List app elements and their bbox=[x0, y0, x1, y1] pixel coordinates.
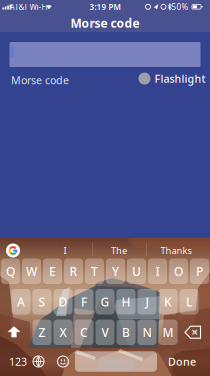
staticText: V bbox=[101, 324, 108, 340]
staticText: The bbox=[111, 244, 127, 257]
button[interactable]: L bbox=[179, 289, 198, 314]
staticText: Thanks bbox=[160, 244, 191, 257]
staticText: J bbox=[145, 294, 148, 310]
button[interactable]: Google search bbox=[6, 243, 20, 257]
button[interactable]: Space bbox=[75, 351, 157, 372]
staticText: G bbox=[100, 294, 109, 310]
button[interactable]: Shift bbox=[0, 326, 30, 338]
staticText: 123 bbox=[9, 354, 27, 369]
button[interactable]: W bbox=[22, 258, 41, 284]
staticText: Z bbox=[38, 324, 45, 340]
staticText: 50% bbox=[171, 2, 188, 12]
staticText: AT&T Wi-Fi bbox=[9, 2, 47, 12]
button[interactable]: F bbox=[74, 289, 93, 314]
button[interactable]: O bbox=[169, 258, 188, 284]
staticText: L bbox=[186, 294, 192, 310]
staticText: C bbox=[80, 324, 88, 340]
button[interactable]: Y bbox=[106, 258, 125, 284]
button[interactable]: A bbox=[11, 289, 30, 314]
button[interactable]: C bbox=[74, 319, 93, 345]
staticText: M bbox=[162, 324, 173, 340]
button[interactable]: N bbox=[137, 319, 156, 345]
button[interactable]: U bbox=[127, 258, 146, 284]
staticText: U bbox=[132, 263, 141, 279]
button[interactable]: G bbox=[95, 289, 114, 314]
staticText: W bbox=[26, 263, 37, 279]
staticText: K bbox=[164, 294, 172, 310]
staticText: I bbox=[63, 244, 66, 257]
staticText: Morse code bbox=[11, 73, 69, 87]
staticText: T bbox=[91, 263, 98, 279]
staticText: F bbox=[81, 294, 87, 310]
staticText: B bbox=[122, 324, 130, 340]
button[interactable]: 123 bbox=[9, 354, 27, 369]
button[interactable]: R bbox=[64, 258, 83, 284]
button[interactable]: E bbox=[43, 258, 62, 284]
staticText: Morse code bbox=[70, 15, 139, 31]
button[interactable]: X bbox=[53, 319, 72, 345]
staticText: Flashlight bbox=[154, 71, 205, 86]
staticText: P bbox=[196, 263, 203, 279]
staticText: A bbox=[17, 294, 25, 310]
staticText: Q bbox=[6, 263, 15, 279]
button[interactable]: M bbox=[158, 319, 177, 345]
staticText: E bbox=[49, 263, 56, 279]
button[interactable]: Done bbox=[168, 354, 196, 369]
button[interactable]: I bbox=[63, 244, 66, 257]
button[interactable]: Switch keyboard bbox=[33, 356, 44, 367]
button[interactable]: V bbox=[95, 319, 114, 345]
staticText: Done bbox=[168, 354, 196, 369]
button[interactable]: Z bbox=[32, 319, 51, 345]
staticText: S bbox=[38, 294, 45, 310]
staticText: 3:19 PM bbox=[89, 2, 120, 12]
staticText: Y bbox=[112, 263, 119, 279]
button[interactable]: J bbox=[137, 289, 156, 314]
button[interactable]: Flashlight bbox=[138, 71, 205, 86]
staticText: X bbox=[59, 324, 66, 340]
button[interactable]: Thanks bbox=[160, 244, 191, 257]
button[interactable]: H bbox=[116, 289, 135, 314]
button[interactable]: S bbox=[32, 289, 51, 314]
button[interactable]: P bbox=[190, 258, 209, 284]
button[interactable]: Q bbox=[1, 258, 20, 284]
button[interactable]: I bbox=[148, 258, 167, 284]
button[interactable]: The bbox=[111, 244, 127, 257]
staticText: O bbox=[174, 263, 183, 279]
staticText: H bbox=[121, 294, 130, 310]
staticText: I bbox=[155, 263, 159, 279]
button[interactable]: Delete bbox=[185, 326, 201, 339]
staticText: R bbox=[69, 263, 77, 279]
button[interactable]: B bbox=[116, 319, 135, 345]
staticText: D bbox=[58, 294, 67, 310]
button[interactable]: K bbox=[158, 289, 177, 314]
button[interactable]: T bbox=[85, 258, 104, 284]
button[interactable]: D bbox=[53, 289, 72, 314]
staticText: N bbox=[142, 324, 151, 340]
button[interactable]: Emoji bbox=[57, 356, 68, 367]
